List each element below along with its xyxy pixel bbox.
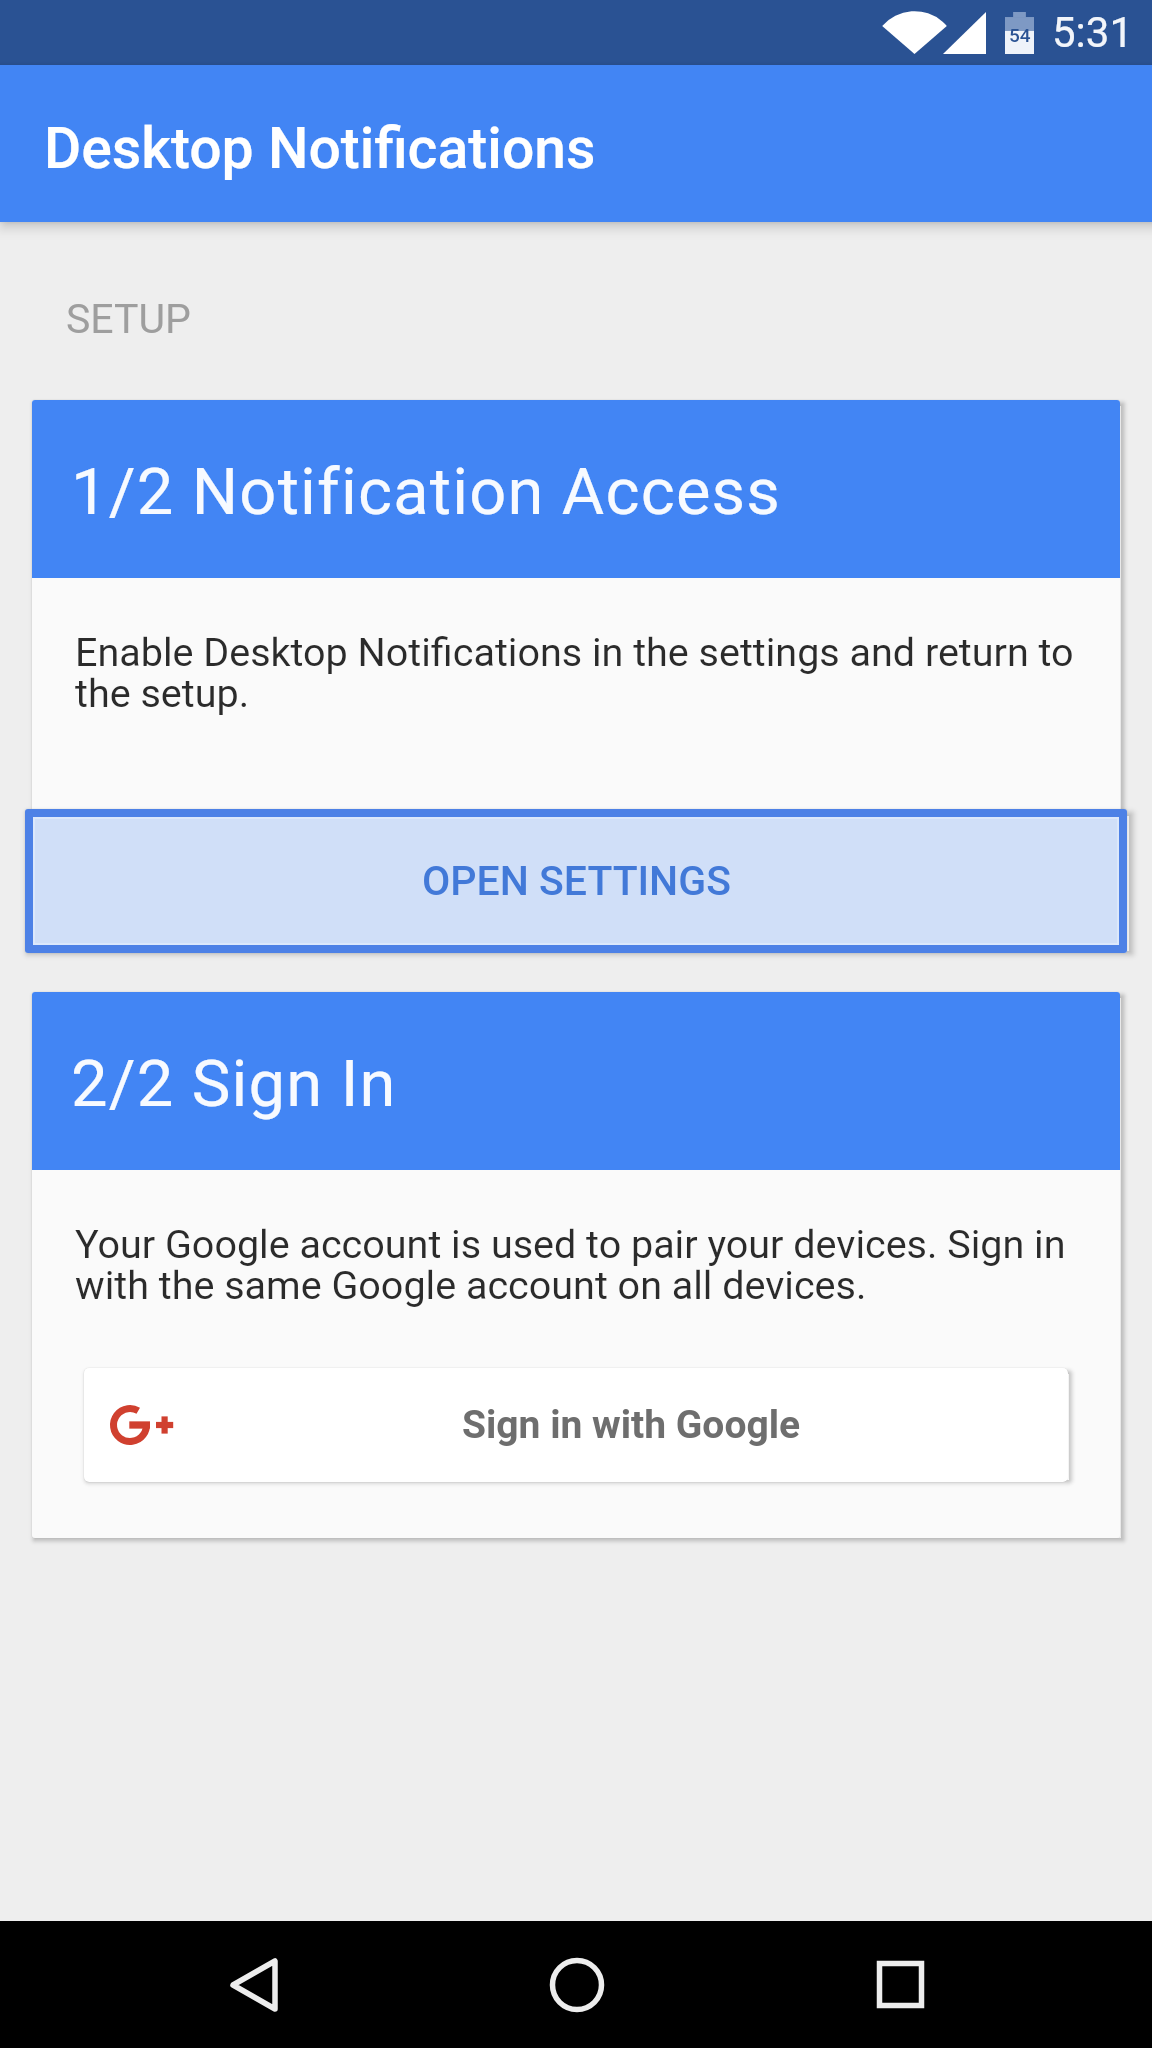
staticText: Desktop Notifications [44,115,596,182]
staticText: OPEN SETTINGS [422,857,731,905]
staticText: Sign in with Google [462,1402,801,1448]
staticText: SETUP [66,295,191,343]
button[interactable]: OPEN SETTINGS [33,817,1119,945]
staticText: 54 [1009,24,1031,46]
staticText: 2/2 Sign In [71,1046,397,1122]
button[interactable]: Back [191,1921,317,2048]
staticText: 5:31 [1052,8,1133,57]
staticText: Your Google account is used to pair your… [75,1221,1078,1309]
staticText: Enable Desktop Notifications in the sett… [75,629,1078,717]
button[interactable]: Sign in with Google [84,1368,1068,1482]
button[interactable]: Home [514,1921,640,2048]
staticText: 1/2 Notification Access [71,454,782,530]
button[interactable]: Recent apps [837,1921,963,2048]
